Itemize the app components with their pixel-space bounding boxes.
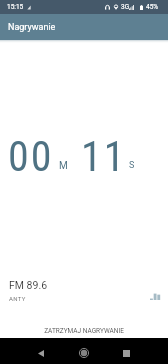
staticText: M [59, 160, 68, 172]
button[interactable]: Recents [106, 338, 146, 364]
staticText: S [129, 160, 135, 171]
staticText: 00 [8, 132, 54, 181]
staticText: 11 [81, 132, 127, 181]
button[interactable]: Back [21, 338, 61, 364]
staticText: 45% [146, 3, 159, 11]
staticText: ZATRZYMAJ NAGRYWANIE [44, 327, 124, 335]
staticText: ANTY [9, 295, 26, 302]
button[interactable]: ZATRZYMAJ NAGRYWANIE [0, 321, 168, 341]
staticText: Nagrywanie [8, 22, 56, 33]
staticText: 15:15 [7, 3, 24, 11]
staticText: 3G [121, 3, 130, 11]
button[interactable]: Home [64, 338, 104, 364]
staticText: FM 89.6 [9, 279, 48, 291]
